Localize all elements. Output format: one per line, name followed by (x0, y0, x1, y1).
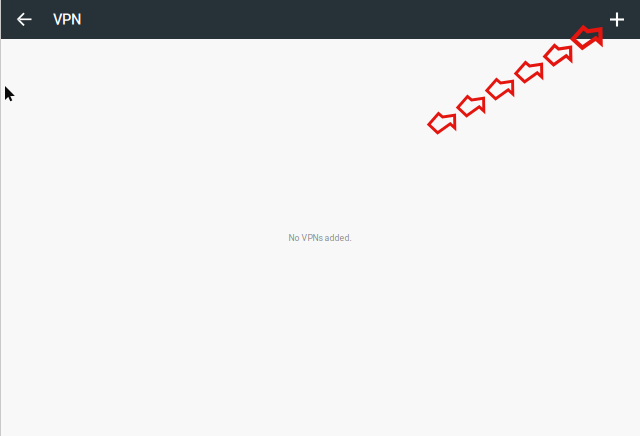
button[interactable]: VPN (45, 0, 89, 39)
button[interactable]: Add VPN profile (595, 0, 639, 39)
staticText: No VPNs added. (288, 233, 351, 243)
staticText: VPN (53, 11, 81, 28)
button[interactable]: Navigate up (3, 0, 45, 39)
